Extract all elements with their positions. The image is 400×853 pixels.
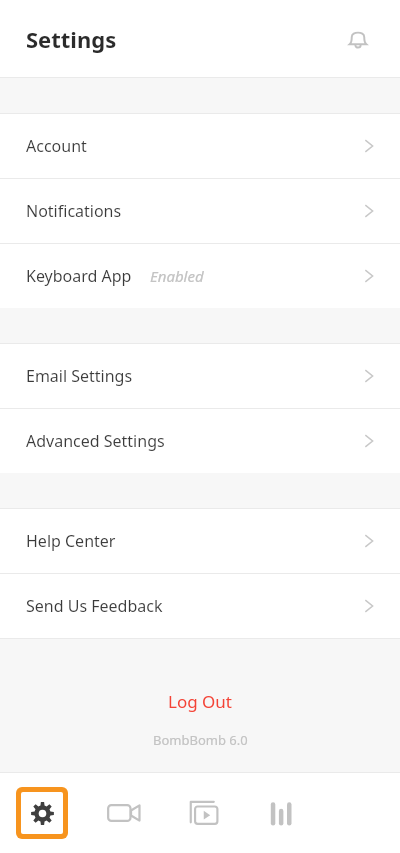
button[interactable]: Notifications	[336, 17, 380, 61]
staticText: Email Settings	[26, 365, 133, 387]
staticText: Send Us Feedback	[26, 595, 163, 617]
button[interactable]: Notifications	[0, 179, 400, 243]
button[interactable]: Help Center	[0, 509, 400, 573]
button[interactable]: Video library	[164, 773, 242, 853]
button[interactable]: Record video	[84, 773, 164, 853]
staticText: Enabled	[150, 266, 204, 286]
staticText: Notifications	[26, 200, 122, 222]
button[interactable]: Log Out	[144, 684, 256, 719]
button[interactable]: Advanced Settings	[0, 409, 400, 473]
staticText: Settings	[26, 24, 117, 54]
staticText: BombBomb 6.0	[153, 731, 248, 749]
button[interactable]: Account	[0, 114, 400, 178]
staticText: Log Out	[168, 690, 232, 713]
button[interactable]: Email Settings	[0, 344, 400, 408]
staticText: Help Center	[26, 530, 116, 552]
button[interactable]: Send Us Feedback	[0, 574, 400, 638]
button[interactable]: Settings	[0, 773, 84, 853]
staticText: Account	[26, 135, 87, 157]
staticText: Keyboard App	[26, 265, 132, 287]
staticText: Advanced Settings	[26, 430, 165, 452]
button[interactable]: Keyboard App	[0, 244, 400, 308]
button[interactable]: Analytics	[242, 773, 320, 853]
